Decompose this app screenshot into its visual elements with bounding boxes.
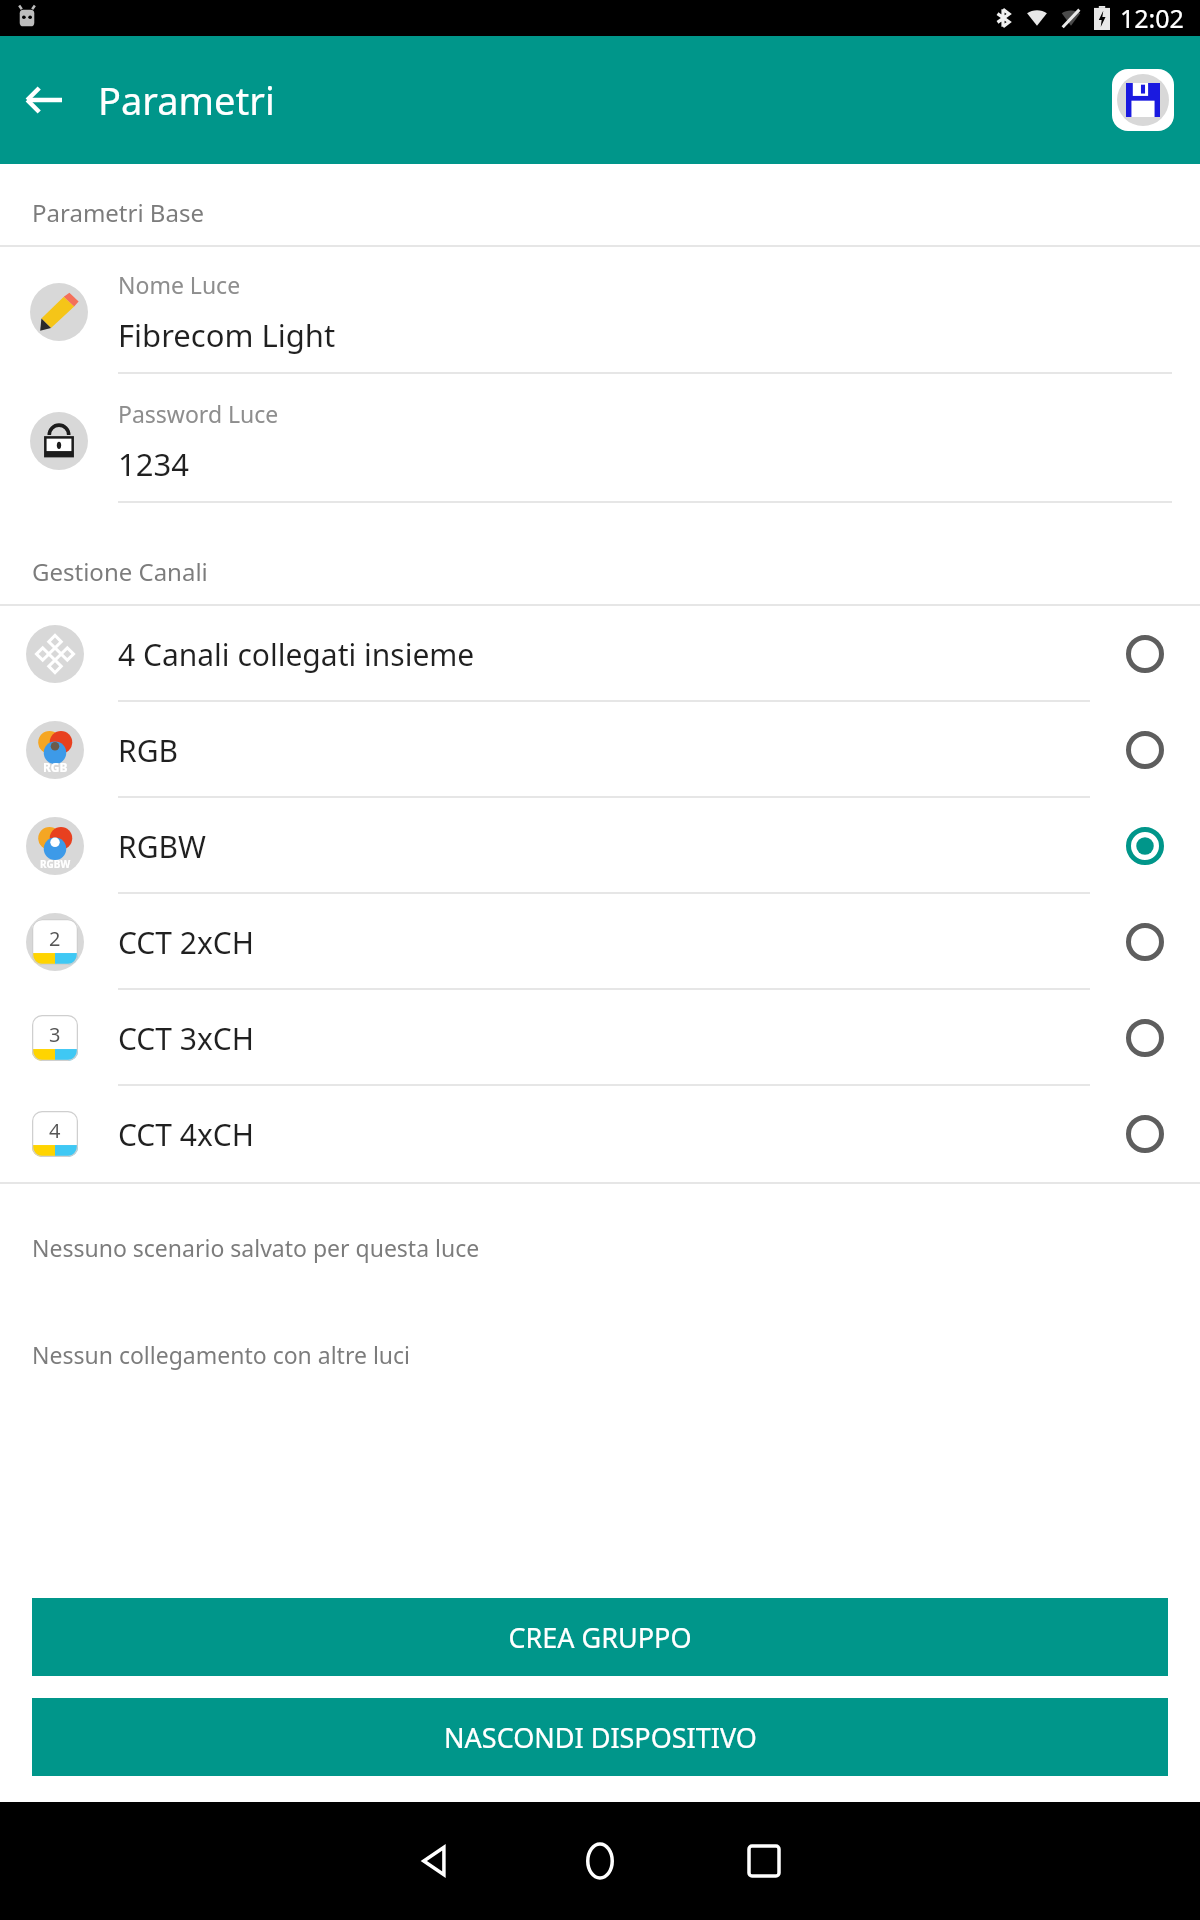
staticText: Nome Luce [118, 269, 241, 300]
staticText: RGBW [40, 857, 71, 871]
staticText: Parametri Base [32, 196, 204, 229]
staticText: Gestione Canali [32, 555, 208, 588]
staticText: Nessuno scenario salvato per questa luce [32, 1232, 480, 1263]
staticText: CCT 2xCH [118, 922, 255, 963]
staticText: 2 [49, 925, 61, 952]
button[interactable]: NASCONDI DISPOSITIVO [32, 1698, 1168, 1776]
button[interactable]: 2 [0, 894, 1200, 990]
staticText: 1234 [118, 443, 189, 485]
button[interactable]: Home [560, 1821, 640, 1901]
staticText: NASCONDI DISPOSITIVO [444, 1719, 757, 1756]
button[interactable]: Back [8, 64, 80, 136]
staticText: RGB [118, 730, 178, 771]
button[interactable]: Password Luce [0, 376, 1200, 505]
button[interactable]: 4 Canali collegati insieme [0, 606, 1200, 702]
staticText: 12:02 [1120, 1, 1184, 35]
staticText: Parametri [98, 74, 275, 126]
staticText: Password Luce [118, 398, 279, 429]
staticText: CCT 3xCH [118, 1018, 255, 1059]
staticText: 4 Canali collegati insieme [118, 634, 475, 675]
staticText: 4 [49, 1117, 61, 1144]
staticText: CREA GRUPPO [508, 1619, 692, 1656]
button[interactable]: 4 [0, 1086, 1200, 1182]
button[interactable]: CREA GRUPPO [32, 1598, 1168, 1676]
staticText: CCT 4xCH [118, 1114, 255, 1155]
button[interactable]: Nome Luce [0, 247, 1200, 376]
button[interactable]: Back [396, 1821, 476, 1901]
staticText: Nessun collegamento con altre luci [32, 1339, 411, 1370]
button[interactable]: Recents [724, 1821, 804, 1901]
button[interactable]: RGBW [0, 798, 1200, 894]
staticText: RGBW [118, 826, 206, 867]
staticText: RGB [43, 759, 68, 775]
button[interactable]: 3 [0, 990, 1200, 1086]
staticText: Fibrecom Light [118, 314, 336, 356]
button[interactable]: RGB [0, 702, 1200, 798]
button[interactable]: Save [1112, 69, 1174, 131]
staticText: 3 [49, 1021, 61, 1048]
